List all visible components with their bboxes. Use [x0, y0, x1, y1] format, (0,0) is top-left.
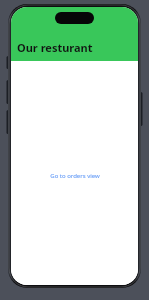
staticText: Go to orders view [50, 172, 100, 180]
button[interactable]: Go to orders view [44, 169, 106, 183]
staticText: Our resturant [17, 40, 93, 55]
